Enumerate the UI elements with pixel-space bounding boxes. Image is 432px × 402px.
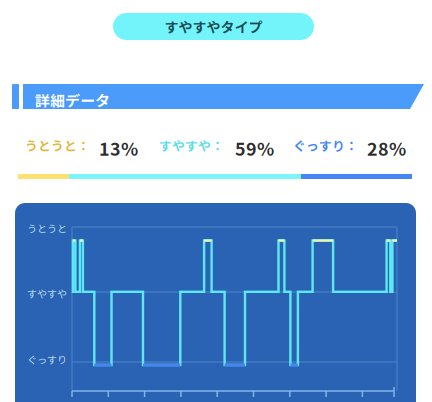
staticText: 詳細データ bbox=[35, 89, 110, 111]
staticText: ぐっすり bbox=[27, 352, 67, 367]
staticText: すやすや： bbox=[159, 136, 224, 154]
staticText: すやすや bbox=[27, 286, 67, 301]
staticText: うとうと bbox=[27, 221, 67, 236]
staticText: ぐっすり： bbox=[293, 136, 358, 154]
button[interactable]: すやすやタイプ bbox=[113, 13, 314, 40]
staticText: うとうと： bbox=[25, 136, 90, 154]
staticText: 59% bbox=[235, 135, 274, 161]
staticText: 28% bbox=[367, 135, 406, 161]
staticText: 13% bbox=[99, 135, 138, 161]
staticText: すやすやタイプ bbox=[164, 16, 262, 37]
